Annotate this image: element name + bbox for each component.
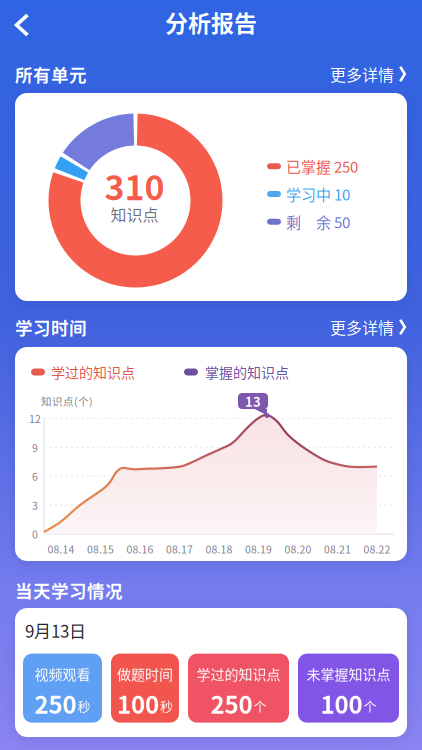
staticText: 100	[117, 686, 159, 721]
staticText: 08.18	[205, 541, 232, 557]
staticText: 剩 余 50	[286, 211, 350, 233]
staticText: 08.19	[245, 541, 272, 557]
staticText: 9月13日	[25, 618, 86, 643]
staticText: 秒	[77, 696, 90, 715]
button[interactable]: 未掌握知识点	[298, 654, 399, 723]
button[interactable]: 更多详情	[330, 62, 407, 86]
button[interactable]: Back	[0, 0, 33, 44]
button[interactable]: 学过的知识点	[188, 654, 289, 723]
staticText: 250	[34, 686, 76, 721]
staticText: 08.22	[363, 541, 390, 557]
staticText: 知识点	[110, 202, 158, 226]
button[interactable]: 更多详情	[330, 315, 407, 339]
staticText: 08.17	[166, 541, 193, 557]
staticText: 08.21	[324, 541, 351, 557]
staticText: 更多详情	[330, 62, 394, 86]
staticText: 分析报告	[165, 5, 257, 39]
staticText: 个	[253, 696, 266, 715]
staticText: 当天学习情况	[15, 577, 123, 603]
staticText: 秒	[160, 696, 173, 715]
staticText: 08.16	[126, 541, 153, 557]
staticText: 知识点(个)	[41, 393, 93, 409]
staticText: 3	[32, 497, 38, 513]
staticText: 个	[363, 696, 376, 715]
staticText: 13	[245, 392, 261, 410]
staticText: 9	[32, 440, 38, 455]
staticText: 视频观看	[34, 664, 90, 684]
staticText: 08.20	[284, 541, 311, 557]
staticText: 0	[32, 526, 38, 542]
staticText: 所有单元	[15, 61, 87, 87]
staticText: 做题时间	[117, 664, 173, 684]
staticText: 310	[104, 161, 164, 210]
staticText: 未掌握知识点	[306, 664, 390, 684]
staticText: 6	[32, 469, 38, 484]
staticText: 100	[320, 686, 362, 721]
staticText: 学过的知识点	[51, 362, 135, 382]
staticText: 更多详情	[330, 315, 394, 339]
button[interactable]: 做题时间	[111, 654, 179, 723]
button[interactable]: 视频观看	[23, 654, 102, 723]
staticText: 掌握的知识点	[205, 362, 289, 382]
staticText: 12	[29, 411, 41, 426]
staticText: 250	[210, 686, 252, 721]
staticText: 学习时间	[15, 314, 87, 340]
staticText: 学过的知识点	[196, 664, 280, 684]
staticText: 08.14	[47, 541, 74, 557]
staticText: 学习中 10	[286, 183, 350, 205]
staticText: 08.15	[87, 541, 114, 557]
staticText: 已掌握 250	[286, 155, 358, 177]
